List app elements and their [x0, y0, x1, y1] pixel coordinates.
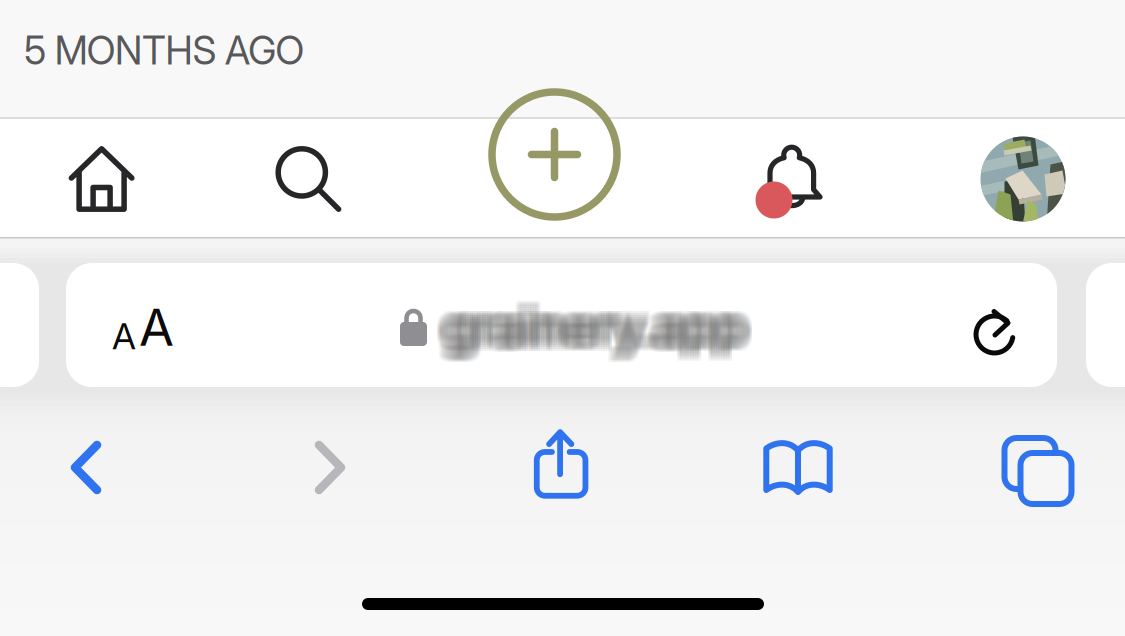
staticText: grainery.app — [446, 300, 747, 361]
staticText: grainery.app — [439, 298, 740, 359]
staticText: grainery.app — [442, 302, 743, 363]
staticText: grainery.app — [444, 302, 745, 363]
staticText: grainery.app — [439, 296, 740, 357]
staticText: grainery.app — [446, 292, 747, 353]
staticText: grainery.app — [434, 290, 735, 351]
staticText: grainery.app — [449, 294, 750, 355]
staticText: grainery.app — [444, 290, 745, 351]
staticText: grainery.app — [454, 302, 755, 363]
staticText: grainery.app — [434, 292, 735, 353]
button[interactable]: Share — [501, 419, 621, 509]
button[interactable]: Bookmarks — [738, 423, 858, 513]
staticText: grainery.app — [434, 298, 735, 359]
staticText: grainery.app — [434, 300, 735, 361]
staticText: grainery.app — [439, 294, 740, 355]
staticText: grainery.app — [451, 292, 752, 353]
staticText: grainery.app — [454, 290, 755, 351]
staticText: grainery.app — [451, 302, 752, 363]
staticText: grainery.app — [444, 300, 745, 361]
staticText: grainery.app — [434, 296, 735, 357]
staticText: grainery.app — [451, 298, 752, 359]
staticText: grainery.app — [449, 290, 750, 351]
staticText: grainery.app — [454, 300, 755, 361]
staticText: grainery.app — [434, 302, 735, 363]
staticText: grainery.app — [442, 290, 743, 351]
button[interactable]: Page settings — [98, 300, 184, 370]
staticText: grainery.app — [446, 294, 747, 355]
staticText: grainery.app — [442, 298, 743, 359]
staticText: grainery.app — [442, 292, 743, 353]
staticText: grainery.app — [442, 294, 743, 355]
staticText: grainery.app — [449, 300, 750, 361]
button[interactable]: Back — [26, 422, 146, 512]
staticText: grainery.app — [437, 296, 738, 357]
staticText: grainery.app — [446, 298, 747, 359]
staticText: A — [139, 297, 174, 358]
staticText: grainery.app — [454, 296, 755, 357]
staticText: grainery.app — [449, 292, 750, 353]
button[interactable]: Reload — [956, 295, 1036, 375]
staticText: grainery.app — [446, 290, 747, 351]
button[interactable]: Forward — [270, 422, 390, 512]
staticText: grainery.app — [451, 296, 752, 357]
staticText: grainery.app — [449, 298, 750, 359]
staticText: grainery.app — [442, 300, 743, 361]
staticText: grainery.app — [444, 296, 745, 357]
button[interactable]: Tabs — [970, 418, 1090, 508]
staticText: grainery.app — [444, 292, 745, 353]
staticText: grainery.app — [439, 292, 740, 353]
staticText: grainery.app — [449, 296, 750, 357]
staticText: grainery.app — [451, 300, 752, 361]
button[interactable]: Search — [248, 124, 368, 234]
staticText: grainery.app — [439, 300, 740, 361]
staticText: grainery.app — [439, 290, 740, 351]
staticText: grainery.app — [444, 298, 745, 359]
staticText: grainery.app — [454, 292, 755, 353]
staticText: grainery.app — [449, 302, 750, 363]
staticText: grainery.app — [434, 294, 735, 355]
button[interactable]: Notifications — [732, 124, 852, 234]
staticText: grainery.app — [451, 294, 752, 355]
staticText: grainery.app — [437, 294, 738, 355]
staticText: grainery.app — [437, 302, 738, 363]
staticText: grainery.app — [437, 292, 738, 353]
staticText: grainery.app — [454, 298, 755, 359]
button[interactable]: Compose — [488, 88, 621, 221]
staticText: grainery.app — [454, 294, 755, 355]
staticText: grainery.app — [437, 298, 738, 359]
button[interactable]: Home — [42, 124, 162, 234]
staticText: grainery.app — [437, 300, 738, 361]
staticText: grainery.app — [439, 302, 740, 363]
button[interactable]: Profile — [963, 124, 1083, 234]
staticText: grainery.app — [451, 290, 752, 351]
staticText: grainery.app — [446, 296, 747, 357]
staticText: grainery.app — [446, 302, 747, 363]
staticText: grainery.app — [442, 296, 743, 357]
staticText: A — [112, 314, 136, 358]
staticText: grainery.app — [444, 294, 745, 355]
staticText: grainery.app — [437, 290, 738, 351]
staticText: 5 MONTHS AGO — [24, 27, 304, 74]
